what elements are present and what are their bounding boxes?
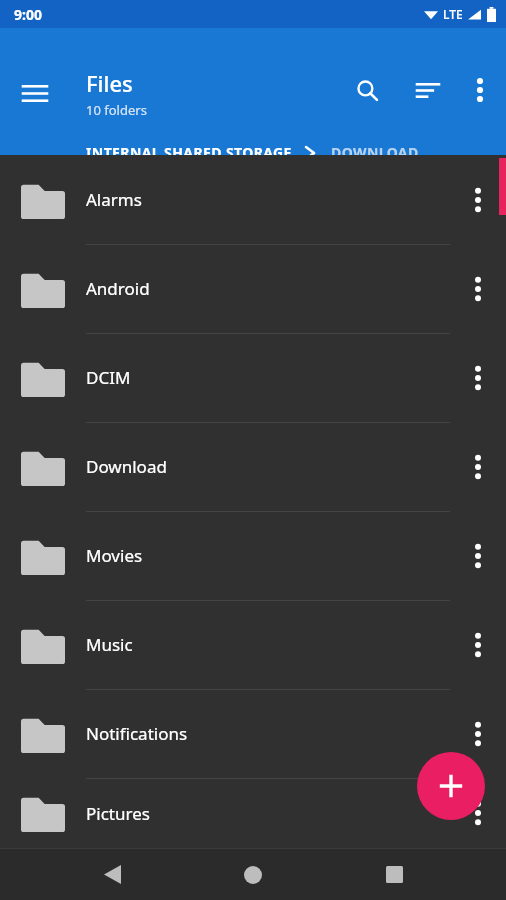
button[interactable]: More options for Download [450, 422, 506, 511]
button[interactable]: More options for Android [450, 244, 506, 333]
button[interactable]: INTERNAL SHARED STORAGE [86, 143, 292, 162]
button[interactable]: Sort [404, 66, 452, 114]
button[interactable]: DOWNLOAD [331, 143, 419, 162]
button[interactable]: More options for Notifications [450, 689, 506, 778]
staticText: INTERNAL SHARED STORAGE [86, 143, 292, 162]
staticText: 9:00 [14, 5, 42, 24]
button[interactable]: Movies [0, 511, 506, 600]
button[interactable]: Notifications [0, 689, 506, 778]
button[interactable]: Pictures [0, 778, 506, 848]
staticText: Music [86, 633, 133, 656]
staticText: Movies [86, 544, 143, 567]
button[interactable]: Back [84, 849, 140, 900]
staticText: Files [86, 68, 133, 98]
staticText: Pictures [86, 802, 150, 825]
button[interactable]: More options for Movies [450, 511, 506, 600]
button[interactable]: Recent apps [366, 849, 422, 900]
button[interactable]: More options for Alarms [450, 155, 506, 244]
button[interactable]: Create new [417, 752, 485, 820]
button[interactable]: Alarms [0, 155, 506, 244]
button[interactable]: More options for DCIM [450, 333, 506, 422]
staticText: Notifications [86, 722, 188, 745]
button[interactable]: Search [343, 66, 391, 114]
staticText: LTE [443, 6, 463, 22]
staticText: DOWNLOAD [331, 143, 419, 162]
staticText: Android [86, 277, 150, 300]
button[interactable]: Music [0, 600, 506, 689]
button[interactable]: Download [0, 422, 506, 511]
button[interactable]: Android [0, 244, 506, 333]
staticText: Download [86, 455, 167, 478]
button[interactable]: More options for Music [450, 600, 506, 689]
button[interactable]: DCIM [0, 333, 506, 422]
button[interactable]: Home [225, 849, 281, 900]
button[interactable]: More options [456, 66, 504, 114]
staticText: Alarms [86, 188, 142, 211]
staticText: DCIM [86, 366, 131, 389]
staticText: 10 folders [86, 101, 147, 119]
button[interactable]: Open navigation drawer [9, 67, 61, 119]
button[interactable]: More options for Pictures [450, 778, 506, 848]
